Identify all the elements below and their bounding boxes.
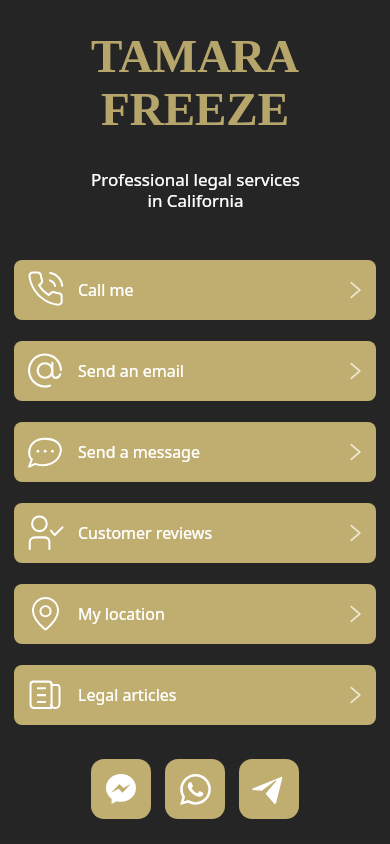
button[interactable]: Telegram <box>239 759 299 819</box>
button[interactable]: My location <box>14 584 376 644</box>
button[interactable]: Legal articles <box>14 665 376 725</box>
staticText: Customer reviews <box>78 522 213 544</box>
staticText: Call me <box>78 279 134 301</box>
staticText: TAMARA FREEZE <box>91 30 299 135</box>
staticText: Legal articles <box>78 684 177 706</box>
staticText: Professional legal services in Californi… <box>91 168 300 212</box>
button[interactable]: Send an email <box>14 341 376 401</box>
button[interactable]: Send a message <box>14 422 376 482</box>
button[interactable]: Messenger <box>91 759 151 819</box>
staticText: My location <box>78 603 165 625</box>
button[interactable]: WhatsApp <box>165 759 225 819</box>
staticText: Send an email <box>78 360 184 382</box>
button[interactable]: Customer reviews <box>14 503 376 563</box>
staticText: Send a message <box>78 441 200 463</box>
button[interactable]: Call me <box>14 260 376 320</box>
